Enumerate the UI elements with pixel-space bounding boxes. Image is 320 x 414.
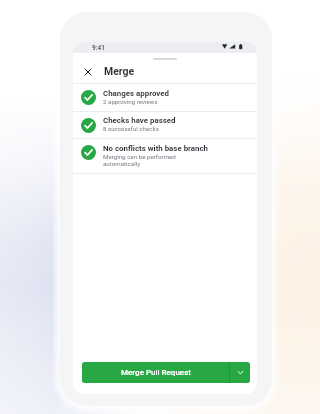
staticText: Changes approved: [103, 89, 169, 98]
staticText: 2 approving reviews: [103, 98, 158, 105]
button[interactable]: Close: [80, 64, 96, 80]
staticText: 8 successful checks: [103, 125, 159, 132]
button[interactable]: Merge Pull Request: [82, 362, 229, 383]
button[interactable]: No conflicts with base branch: [73, 139, 257, 173]
button[interactable]: More merge options: [230, 362, 250, 383]
staticText: Merge: [104, 65, 135, 77]
staticText: 9:41: [92, 44, 105, 52]
button[interactable]: Changes approved: [73, 84, 257, 111]
staticText: automatically: [103, 160, 141, 167]
staticText: Merging can be performed: [103, 153, 176, 160]
staticText: Merge Pull Request: [121, 368, 191, 377]
button[interactable]: Checks have passed: [73, 112, 257, 138]
staticText: No conflicts with base branch: [103, 144, 209, 153]
staticText: Checks have passed: [103, 116, 176, 125]
